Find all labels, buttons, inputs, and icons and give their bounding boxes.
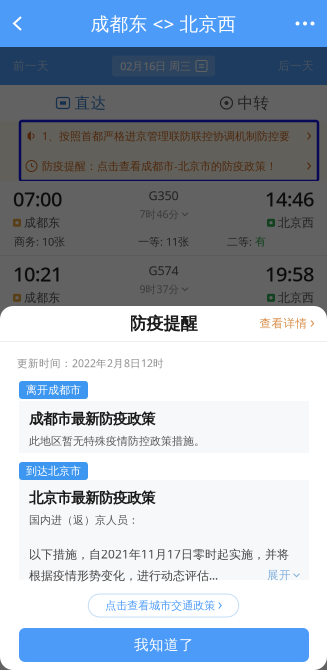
button[interactable]: 1、按照首都严格进京管理联防联控协调机制防控要 [0,121,327,151]
staticText: 后一天 [278,59,314,73]
staticText: 查看详情 [259,316,307,331]
staticText: 14:46 [265,185,314,212]
button[interactable]: Back [0,0,38,47]
staticText: 成都东 <> 北京西 [90,11,236,36]
button[interactable]: 直达 [0,85,163,121]
button[interactable]: More options [283,0,327,47]
button[interactable]: 02月16日 周三 [112,55,215,76]
staticText: 北京市最新防疫政策 [29,489,155,507]
button[interactable]: 展开 [267,568,300,582]
button[interactable]: 我知道了 [19,628,309,662]
button[interactable]: 07:00 [0,181,327,255]
staticText: 直达 [74,93,106,113]
staticText: 此地区暂无特殊疫情防控政策措施。 [29,434,205,448]
staticText: 点击查看城市交通政策 [105,599,215,612]
staticText: 成都东 [24,215,60,230]
staticText: 以下措施，自2021年11月17日零时起实施，并将 [29,546,289,562]
staticText: 国内进（返）京人员： [29,513,139,527]
staticText: 有 [255,235,266,248]
staticText: 根据疫情形势变化，进行动态评估... [29,567,218,583]
staticText: 我知道了 [134,636,194,654]
button[interactable]: 后一天 [244,47,327,85]
staticText: 9时37分 [139,282,179,296]
staticText: 一等: 11张 [138,234,189,249]
staticText: 到达北京市 [26,464,81,478]
staticText: 成都东 [24,290,60,305]
staticText: 商务: 10张 [14,234,65,249]
staticText: 一等: 11张 [138,309,189,324]
staticText: 展开 [267,568,291,582]
button[interactable]: 10:21 [0,256,327,330]
staticText: 防疫提醒 [129,313,197,334]
button[interactable]: 中转 [163,85,327,121]
staticText: 北京西 [278,290,314,305]
staticText: 北京西 [278,215,314,230]
staticText: 防疫提醒：点击查看成都市-北京市的防疫政策！ [42,158,277,173]
staticText: 19:58 [265,260,314,287]
button[interactable]: 防疫提醒：点击查看成都市-北京市的防疫政策！ [0,151,327,181]
button[interactable]: 前一天 [0,47,83,85]
staticText: 07:00 [13,185,62,212]
staticText: 离开成都市 [26,383,81,397]
staticText: G350 [148,187,178,204]
button[interactable]: 查看详情 [259,306,327,341]
staticText: 前一天 [13,59,49,73]
staticText: 有 [255,310,266,323]
button[interactable]: 点击查看城市交通政策 [88,594,239,617]
staticText: 成都市最新防疫政策 [29,410,155,428]
staticText: G574 [148,262,178,279]
staticText: 1、按照首都严格进京管理联防联控协调机制防控要 [42,128,290,143]
staticText: 02月16日 周三 [120,58,191,73]
staticText: 中转 [237,93,269,113]
staticText: 更新时间：2022年2月8日12时 [17,356,164,370]
staticText: 二等: [227,234,255,249]
staticText: 10:21 [13,260,62,287]
staticText: 7时46分 [139,207,179,221]
